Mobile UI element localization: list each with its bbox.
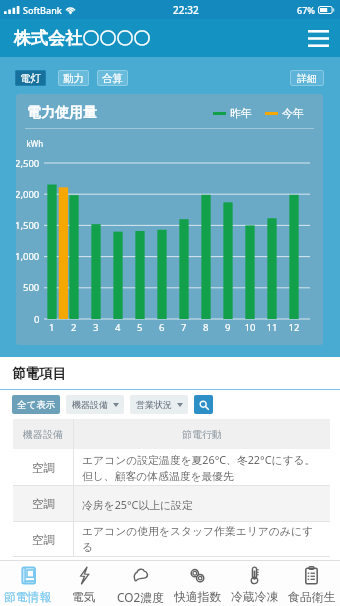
button[interactable]: 空調 <box>13 522 330 557</box>
button[interactable]: 合算 <box>97 70 128 86</box>
button[interactable]: 詳細 <box>290 70 324 86</box>
staticText: 機器設備 <box>72 399 108 410</box>
staticText: 節電行動 <box>182 428 222 441</box>
button[interactable]: CO2濃度 <box>112 561 169 606</box>
button[interactable]: 電気 <box>56 561 112 606</box>
staticText: 節電項目 <box>12 365 66 382</box>
staticText: 全て表示 <box>17 399 56 411</box>
staticText: 電灯 <box>20 72 41 85</box>
staticText: エアコンの使用をスタッフ作業エリアのみにする <box>82 525 316 554</box>
button[interactable]: 全て表示 <box>12 395 60 414</box>
staticText: 食品衛生 <box>288 590 336 605</box>
staticText: 空調 <box>32 461 55 475</box>
button[interactable]: 冷蔵冷凍 <box>226 561 283 606</box>
staticText: 冷房を25°C以上に設定 <box>82 497 193 512</box>
button[interactable]: 節電情報 <box>0 561 56 606</box>
button[interactable]: Search <box>194 395 213 414</box>
button[interactable]: 空調 <box>13 449 330 486</box>
button[interactable]: 電灯 <box>15 70 46 86</box>
staticText: 電力使用量 <box>27 104 97 122</box>
staticText: 昨年 <box>230 106 252 120</box>
button[interactable]: 動力 <box>58 70 89 86</box>
button[interactable]: 快適指数 <box>169 561 226 606</box>
button[interactable]: Menu <box>304 24 332 52</box>
staticText: 合算 <box>102 72 123 85</box>
staticText: 今年 <box>282 106 304 120</box>
staticText: 空調 <box>32 533 55 547</box>
staticText: 冷蔵冷凍 <box>231 590 279 605</box>
staticText: 22:32 <box>173 3 199 17</box>
staticText: 空調 <box>32 497 55 511</box>
button[interactable]: 機器設備 <box>66 395 124 414</box>
button[interactable]: 空調 <box>13 486 330 522</box>
staticText: 67% <box>297 4 315 16</box>
staticText: エアコンの設定温度を夏26°C、冬22°Cにする。但し、顧客の体感温度を最優先 <box>82 452 316 483</box>
staticText: 詳細 <box>297 72 317 85</box>
staticText: CO2濃度 <box>117 589 164 605</box>
staticText: 営業状況 <box>136 399 172 410</box>
staticText: 動力 <box>63 72 84 85</box>
staticText: 機器設備 <box>23 428 63 441</box>
staticText: 電気 <box>72 590 96 605</box>
button[interactable]: 食品衛生 <box>283 561 340 606</box>
staticText: 節電情報 <box>4 590 52 605</box>
staticText: 快適指数 <box>174 590 222 605</box>
staticText: SoftBank <box>23 4 62 16</box>
staticText: 株式会社〇〇〇〇 <box>14 28 150 49</box>
button[interactable]: 営業状況 <box>130 395 188 414</box>
